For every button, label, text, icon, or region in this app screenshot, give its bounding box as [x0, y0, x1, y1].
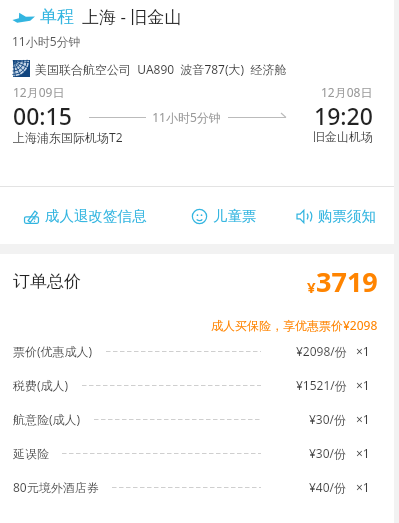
staticText: 儿童票: [213, 207, 257, 225]
other: 成人退改签信息: [23, 208, 40, 225]
staticText: ¥30/份: [309, 411, 347, 427]
staticText: 订单总价: [13, 271, 81, 292]
staticText: 上海 - 旧金山: [82, 5, 182, 28]
staticText: ×1: [356, 411, 370, 427]
staticText: 11小时5分钟: [146, 109, 228, 125]
staticText: 延误险: [13, 446, 49, 461]
staticText: ¥1521/份: [296, 377, 347, 393]
staticText: 19:20: [314, 100, 373, 131]
staticText: 税费(成人): [13, 377, 69, 393]
staticText: ¥2098/份: [296, 343, 347, 359]
staticText: 购票须知: [318, 207, 376, 225]
button[interactable]: 成人退改签信息: [0, 207, 170, 225]
button[interactable]: 购票须知: [278, 207, 394, 225]
other: 儿童票: [191, 208, 208, 225]
staticText: ¥40/份: [309, 479, 347, 495]
staticText: ×1: [356, 343, 370, 359]
staticText: 票价(优惠成人): [13, 343, 93, 359]
staticText: 12月09日: [13, 84, 65, 100]
staticText: ×1: [356, 445, 370, 461]
staticText: 12月08日: [321, 84, 373, 100]
staticText: 单程: [40, 6, 74, 27]
staticText: 80元境外酒店券: [13, 479, 99, 495]
button[interactable]: 儿童票: [170, 207, 278, 225]
staticText: 航意险(成人): [13, 411, 81, 427]
staticText: ×1: [356, 479, 370, 495]
staticText: 00:15: [13, 100, 72, 131]
staticText: ×1: [356, 377, 370, 393]
staticText: 成人买保险，享优惠票价¥2098: [211, 317, 378, 333]
staticText: ¥30/份: [309, 445, 347, 461]
staticText: 美国联合航空公司 UA890 波音787(大) 经济舱: [35, 61, 287, 77]
staticText: ¥: [307, 277, 316, 297]
other: 购票须知: [296, 208, 313, 225]
staticText: 成人退改签信息: [45, 207, 147, 225]
staticText: 上海浦东国际机场T2: [13, 129, 123, 145]
staticText: 11小时5分钟: [12, 33, 81, 49]
staticText: 旧金山机场: [313, 129, 373, 144]
staticText: 3719: [316, 263, 378, 300]
